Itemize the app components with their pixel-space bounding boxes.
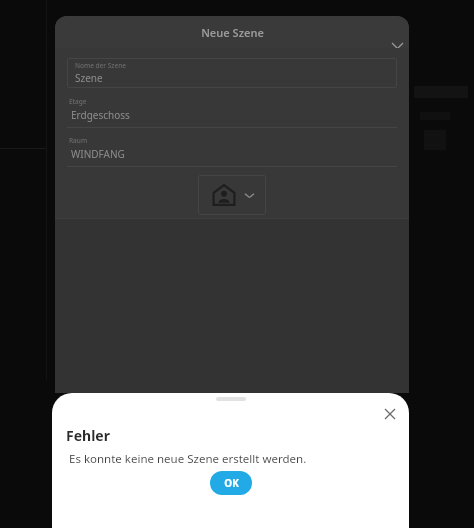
staticText: Es konnte keine neue Szene erstellt werd… bbox=[69, 451, 307, 467]
staticText: Raum bbox=[69, 136, 88, 145]
button[interactable]: Raum bbox=[67, 136, 397, 167]
staticText: Szene bbox=[75, 71, 103, 85]
button[interactable]: Etage bbox=[67, 97, 397, 128]
staticText: Erdgeschoss bbox=[71, 108, 130, 122]
staticText: Fehler bbox=[66, 426, 110, 445]
staticText: WINDFANG bbox=[71, 147, 125, 161]
staticText: Nome der Szene bbox=[75, 61, 127, 70]
staticText: Etage bbox=[69, 97, 87, 106]
button[interactable]: Schließen bbox=[375, 399, 405, 429]
button[interactable]: Nome der Szene bbox=[67, 58, 397, 88]
staticText: OK bbox=[224, 476, 239, 490]
button[interactable]: Symbol auswählen bbox=[198, 175, 266, 215]
staticText: Neue Szene bbox=[201, 25, 264, 40]
button[interactable]: Schließen bbox=[381, 32, 409, 64]
button[interactable]: OK bbox=[210, 471, 252, 495]
